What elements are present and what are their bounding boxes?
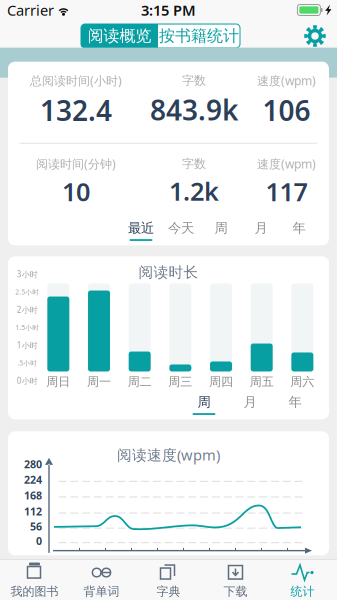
button[interactable]: 阅读概览 <box>81 24 158 48</box>
staticText: 3:15 PM <box>141 0 196 20</box>
button[interactable]: 最近 <box>121 219 161 241</box>
staticText: 1.2k <box>169 174 219 208</box>
staticText: 阅读时间(分钟) <box>36 156 116 172</box>
staticText: .5小时 <box>17 358 37 367</box>
staticText: 按书籍统计 <box>159 26 239 46</box>
staticText: 周三 <box>168 374 192 389</box>
button[interactable]: 我的图书 <box>1 559 68 600</box>
button[interactable]: 月 <box>227 393 273 415</box>
staticText: 速度(wpm) <box>257 73 316 88</box>
staticText: 速度(wpm) <box>257 156 316 172</box>
staticText: 0 <box>36 534 42 548</box>
staticText: 最近 <box>128 220 154 236</box>
staticText: 1小时 <box>17 340 38 350</box>
staticText: 843.9k <box>150 91 238 128</box>
staticText: 周四 <box>209 374 233 389</box>
staticText: 3小时 <box>17 269 38 280</box>
staticText: 106 <box>262 92 310 129</box>
staticText: 周六 <box>290 374 314 389</box>
staticText: 2小时 <box>17 304 38 315</box>
staticText: 周日 <box>46 374 70 389</box>
button[interactable]: 周 <box>181 393 227 415</box>
staticText: 今天 <box>168 220 194 236</box>
staticText: 总阅读时间(小时) <box>30 73 122 88</box>
staticText: 字数 <box>182 156 206 171</box>
staticText: 168 <box>24 488 42 502</box>
staticText: 我的图书 <box>10 584 58 599</box>
staticText: 背单词 <box>83 584 119 599</box>
staticText: 阅读速度(wpm) <box>117 445 220 465</box>
button[interactable]: 下载 <box>202 559 269 600</box>
staticText: 下载 <box>223 584 247 599</box>
button[interactable]: 月 <box>241 219 281 241</box>
staticText: 阅读时长 <box>138 263 198 281</box>
button[interactable]: Settings <box>304 25 326 47</box>
staticText: 周一 <box>87 374 111 389</box>
staticText: 字典 <box>156 584 180 599</box>
button[interactable]: 年 <box>281 219 317 241</box>
staticText: 月 <box>243 394 256 410</box>
staticText: 年 <box>288 394 301 410</box>
button[interactable]: 按书籍统计 <box>158 24 240 48</box>
staticText: 周二 <box>128 374 152 389</box>
staticText: 周五 <box>250 374 274 389</box>
staticText: 周 <box>214 220 227 236</box>
staticText: 280 <box>24 457 42 471</box>
button[interactable]: 今天 <box>161 219 201 241</box>
staticText: 56 <box>30 519 42 534</box>
staticText: 0小时 <box>17 375 38 386</box>
staticText: 117 <box>265 175 307 208</box>
staticText: 月 <box>254 220 267 236</box>
staticText: 10 <box>62 175 90 208</box>
staticText: 112 <box>24 504 42 518</box>
staticText: 统计 <box>290 584 314 599</box>
staticText: 阅读概览 <box>87 26 151 46</box>
staticText: 2.5小时 <box>15 288 39 296</box>
button[interactable]: 统计 <box>269 559 336 600</box>
button[interactable]: 周 <box>201 219 241 241</box>
staticText: 132.4 <box>40 92 112 129</box>
staticText: 1.5小时 <box>15 323 39 332</box>
staticText: 年 <box>292 220 305 236</box>
staticText: 字数 <box>182 73 206 88</box>
staticText: Carrier <box>7 0 54 20</box>
button[interactable]: 字典 <box>135 559 202 600</box>
button[interactable]: 年 <box>273 393 317 415</box>
staticText: 周 <box>197 394 210 410</box>
staticText: 224 <box>24 473 42 487</box>
button[interactable]: 背单词 <box>68 559 135 600</box>
